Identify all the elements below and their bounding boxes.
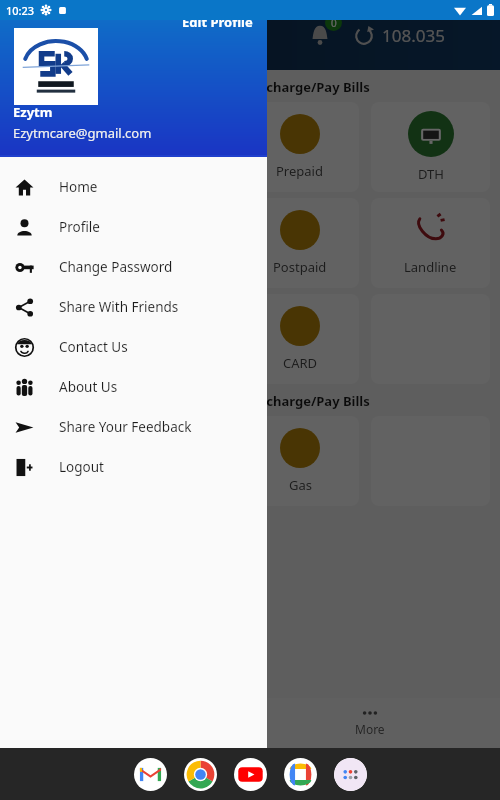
staticText: About Us [59,378,118,396]
staticText: DTH [418,165,444,183]
button[interactable]: Chrome [184,758,217,791]
button[interactable]: YouTube [234,758,267,791]
button[interactable]: Gas [240,416,359,506]
staticText: Contact Us [59,338,128,356]
button[interactable]: Change Password [0,247,267,287]
button[interactable]: Logout [0,447,267,487]
staticText: Recharge/Pay Bills [250,392,370,410]
button[interactable]: Edit Profile [180,11,255,33]
staticText: Postpaid [273,258,327,276]
staticText: Share With Friends [59,298,179,316]
button[interactable]: CARD [240,294,359,384]
staticText: Logout [59,458,104,476]
button[interactable]: More [355,710,385,737]
button[interactable]: Profile [0,207,267,247]
button[interactable]: Share Your Feedback [0,407,267,447]
button[interactable]: Share With Friends [0,287,267,327]
button[interactable]: DTH [371,102,490,192]
staticText: More [355,721,385,737]
staticText: Change Password [59,258,173,276]
button[interactable]: Contact Us [0,327,267,367]
staticText: Ezytm [13,103,53,121]
button[interactable]: Home [0,167,267,207]
staticText: Home [59,178,98,196]
staticText: Profile [59,218,100,236]
staticText: CARD [283,354,318,372]
button[interactable]: About Us [0,367,267,407]
button[interactable]: Photos [284,758,317,791]
staticText: 10:23 [6,3,35,18]
staticText: Gas [289,476,312,494]
button[interactable]: Postpaid [240,198,359,288]
staticText: Ezytmcare@gmail.com [13,124,152,142]
button[interactable]: Landline [371,198,490,288]
staticText: 0 [331,16,337,30]
staticText: Landline [404,258,457,276]
button[interactable]: 108.035 [350,20,449,51]
staticText: Share Your Feedback [59,418,192,436]
button[interactable]: All apps [334,758,367,791]
staticText: Prepaid [276,162,323,180]
button[interactable]: Notifications [300,15,340,55]
staticText: Recharge/Pay Bills [250,78,370,96]
button[interactable]: Prepaid [240,102,359,192]
button[interactable]: Gmail [134,758,167,791]
staticText: 108.035 [382,24,445,47]
